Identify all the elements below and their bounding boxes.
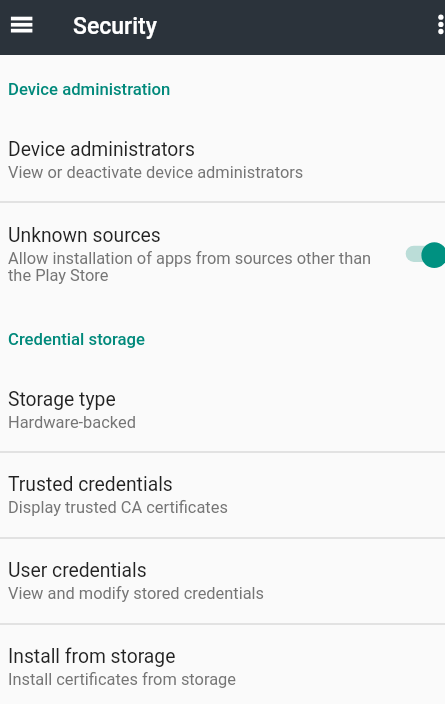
button[interactable]: More options	[405, 0, 445, 55]
staticText: Trusted credentials	[8, 473, 173, 496]
button[interactable]: Install from storage	[0, 622, 445, 704]
staticText: User credentials	[8, 559, 147, 582]
staticText: View or deactivate device administrators	[8, 163, 304, 182]
staticText: Display trusted CA certificates	[8, 498, 228, 517]
staticText: Storage type	[8, 388, 116, 411]
staticText: Install certificates from storage	[8, 670, 236, 689]
staticText: Hardware-backed	[8, 413, 136, 432]
button[interactable]: Unknown sources toggle	[385, 231, 445, 277]
staticText: Device administrators	[8, 138, 195, 161]
staticText: Allow installation of apps from sources …	[8, 249, 383, 285]
button[interactable]: Unknown sources	[0, 200, 445, 304]
button[interactable]: Device administrators	[0, 115, 445, 200]
staticText: Device administration	[8, 80, 171, 100]
staticText: Install from storage	[8, 645, 176, 668]
staticText: Credential storage	[8, 330, 146, 350]
staticText: Unknown sources	[8, 224, 161, 247]
staticText: View and modify stored credentials	[8, 584, 265, 603]
button[interactable]: Trusted credentials	[0, 450, 445, 536]
button[interactable]: Open navigation drawer	[0, 0, 44, 55]
button[interactable]: Storage type	[0, 365, 445, 450]
button[interactable]: User credentials	[0, 536, 445, 622]
staticText: Security	[73, 13, 157, 40]
